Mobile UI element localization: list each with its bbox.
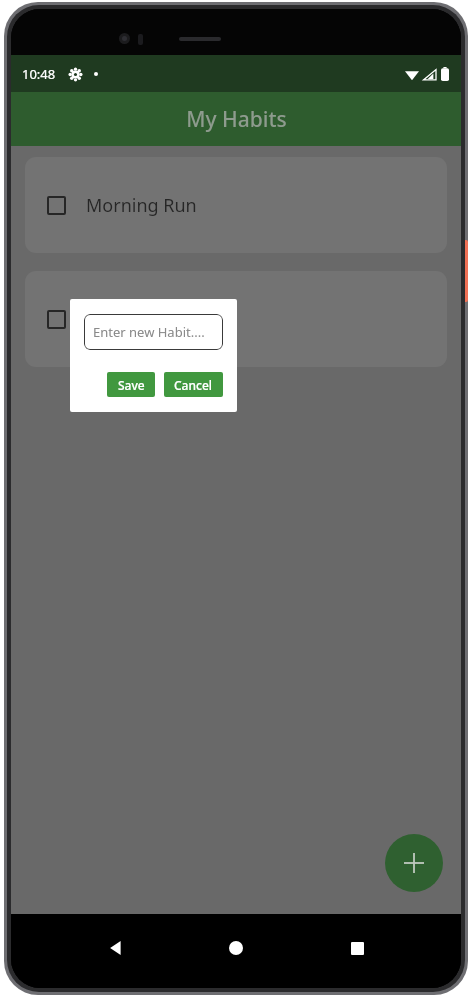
staticText: Gym xyxy=(86,307,126,332)
button[interactable]: Home xyxy=(219,931,253,965)
button[interactable]: Recent apps xyxy=(340,931,374,965)
button[interactable]: Toggle Morning Run xyxy=(47,196,66,215)
button[interactable]: Toggle Gym xyxy=(25,271,447,367)
button[interactable]: Enter new Habit.... xyxy=(84,314,223,350)
button[interactable]: Save xyxy=(107,372,155,397)
staticText: My Habits xyxy=(186,105,287,134)
staticText: 10:48 xyxy=(22,65,56,83)
staticText: Cancel xyxy=(174,377,213,393)
button[interactable]: Add habit xyxy=(385,834,443,892)
button[interactable]: Back xyxy=(98,931,132,965)
button[interactable]: Cancel xyxy=(164,372,223,397)
staticText: Enter new Habit.... xyxy=(93,323,205,341)
staticText: Morning Run xyxy=(86,193,197,218)
button[interactable]: Toggle Gym xyxy=(47,310,66,329)
staticText: Save xyxy=(118,377,145,393)
button[interactable]: Toggle Morning Run xyxy=(25,157,447,253)
